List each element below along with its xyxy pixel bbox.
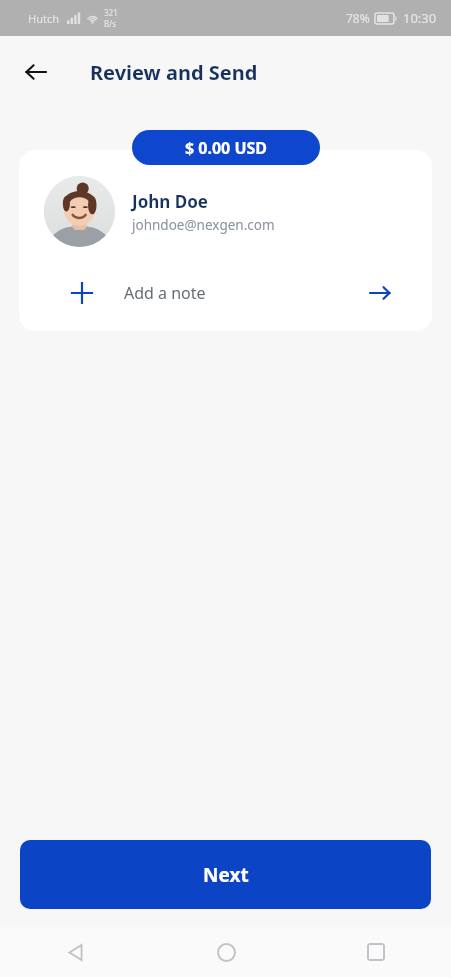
staticText: 10:30 <box>403 9 437 27</box>
button[interactable]: $ 0.00 USD <box>132 130 320 165</box>
staticText: 78% <box>346 10 370 26</box>
button[interactable]: Add a note <box>19 255 432 331</box>
button[interactable]: Back <box>14 50 58 94</box>
staticText: johndoe@nexgen.com <box>132 216 275 234</box>
staticText: Add a note <box>124 282 206 304</box>
staticText: John Doe <box>132 190 208 213</box>
staticText: 321 <box>104 7 118 18</box>
button[interactable]: Next <box>20 840 431 909</box>
staticText: Next <box>203 862 249 888</box>
staticText: Hutch <box>28 11 59 26</box>
staticText: B/s <box>104 18 117 29</box>
button[interactable]: Back <box>0 927 151 977</box>
button[interactable]: Home <box>151 927 301 977</box>
button[interactable]: John Doe <box>44 176 412 247</box>
staticText: Review and Send <box>90 59 258 86</box>
button[interactable]: Recent apps <box>301 927 451 977</box>
staticText: $ 0.00 USD <box>185 137 268 159</box>
